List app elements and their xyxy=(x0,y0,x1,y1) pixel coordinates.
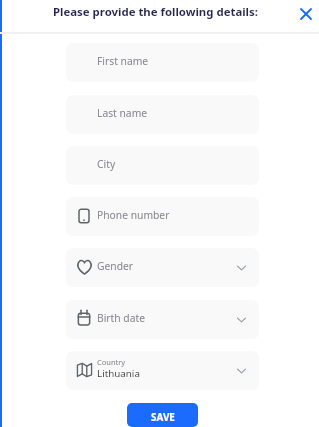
staticText: Birth date xyxy=(97,311,145,325)
staticText: SAVE xyxy=(151,410,175,423)
staticText: Please provide the following details: xyxy=(53,4,258,20)
button[interactable]: Gender xyxy=(66,248,259,287)
button[interactable]: City xyxy=(66,146,259,185)
staticText: Country xyxy=(97,357,126,367)
button[interactable]: SAVE xyxy=(127,403,198,427)
staticText: Last name xyxy=(97,106,148,120)
staticText: First name xyxy=(97,54,149,68)
staticText: Gender xyxy=(97,259,134,273)
button[interactable]: First name xyxy=(66,43,259,82)
button[interactable]: Last name xyxy=(66,95,259,134)
button[interactable]: Phone number xyxy=(66,197,259,236)
button[interactable]: Birth date xyxy=(66,300,259,339)
staticText: Phone number xyxy=(97,208,170,222)
button[interactable]: Country xyxy=(66,351,259,390)
staticText: City xyxy=(97,157,116,171)
staticText: Lithuania xyxy=(97,367,140,380)
button[interactable]: Close xyxy=(296,4,316,24)
